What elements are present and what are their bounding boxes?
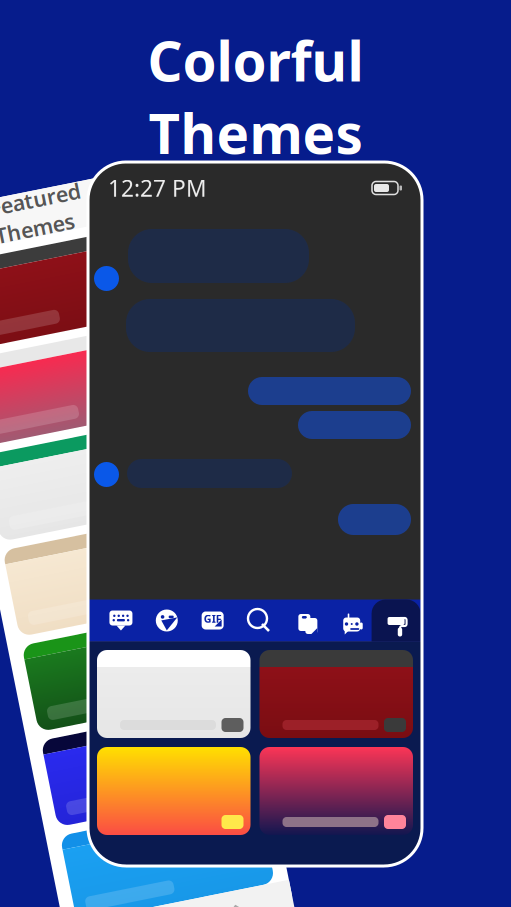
button[interactable]: Theme [97,650,250,738]
button[interactable]: Themes [373,599,419,641]
staticText: 12:27 PM [108,173,207,203]
staticText: Themes [148,97,362,169]
staticText: GIF [204,611,222,626]
button[interactable]: Theme [97,747,250,835]
button[interactable]: GIF [190,599,236,641]
button[interactable]: Theme [259,747,413,835]
button[interactable]: Clipboard [281,599,327,641]
button[interactable]: Keyboard [98,599,144,641]
button[interactable]: Theme [259,650,413,738]
staticText: Featured Themes [63,178,155,234]
button[interactable]: Bot [327,599,373,641]
button[interactable]: Stickers [144,599,190,641]
button[interactable]: Search web [236,599,281,641]
staticText: Colorful [147,24,363,97]
